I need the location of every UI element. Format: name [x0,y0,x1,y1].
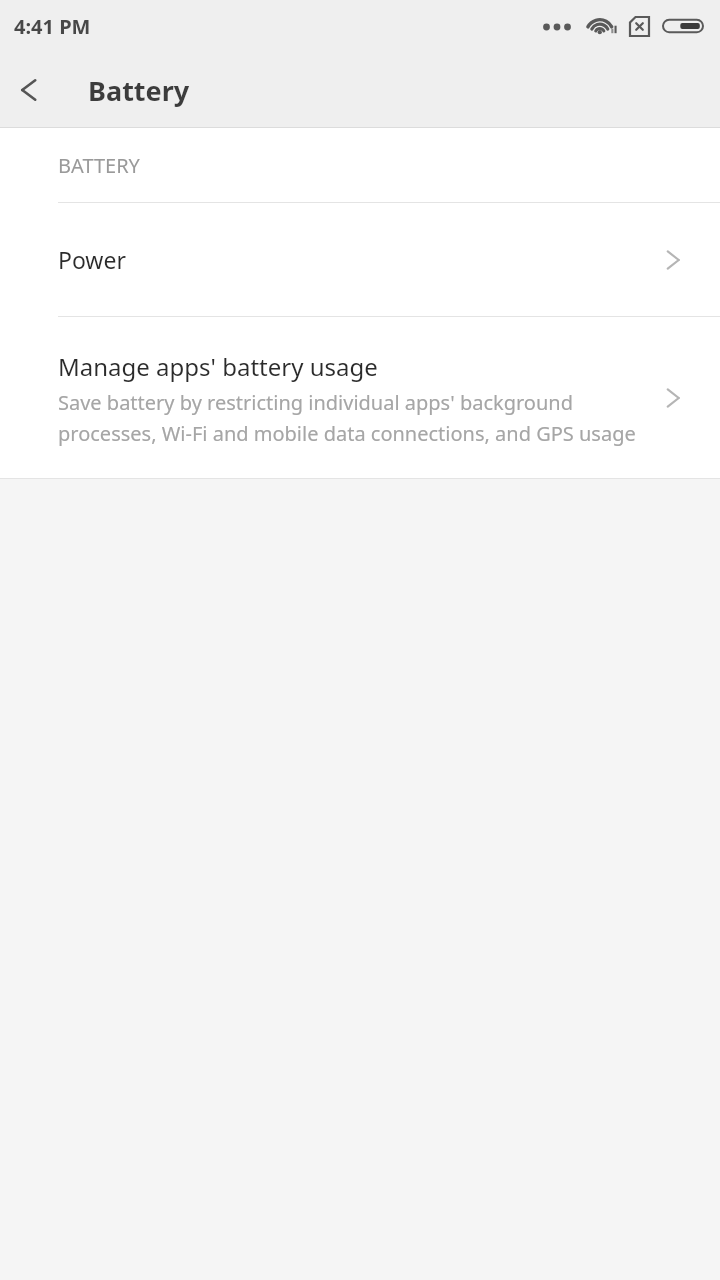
staticText: Save battery by restricting individual a… [58,389,652,446]
staticText: Battery [88,72,190,109]
staticText: BATTERY [58,152,140,179]
staticText: 4:41 PM [14,13,91,40]
button[interactable]: Back [0,52,58,128]
button[interactable]: Manage apps' battery usage [0,317,720,478]
staticText: Manage apps' battery usage [58,350,378,383]
button[interactable]: Power [0,203,720,316]
staticText: Power [58,244,662,275]
